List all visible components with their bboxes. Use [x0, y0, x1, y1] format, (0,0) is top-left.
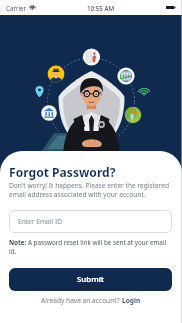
staticText: Don't worry! It happens. Please enter th… — [9, 181, 172, 198]
staticText: Carrier — [6, 4, 27, 12]
staticText: Login — [122, 296, 141, 305]
staticText: Note: A password reset link will be sent… — [9, 238, 172, 256]
staticText: Forgot Password? — [9, 164, 116, 180]
button[interactable]: Already have an account? — [9, 296, 172, 305]
button[interactable]: Submit — [9, 268, 172, 291]
staticText: 10:55 AM — [87, 4, 115, 12]
staticText: Already have an account? — [41, 296, 122, 305]
staticText: Submit — [77, 274, 105, 285]
button[interactable]: Enter Email ID — [9, 210, 172, 233]
staticText: Enter Email ID — [18, 217, 62, 226]
